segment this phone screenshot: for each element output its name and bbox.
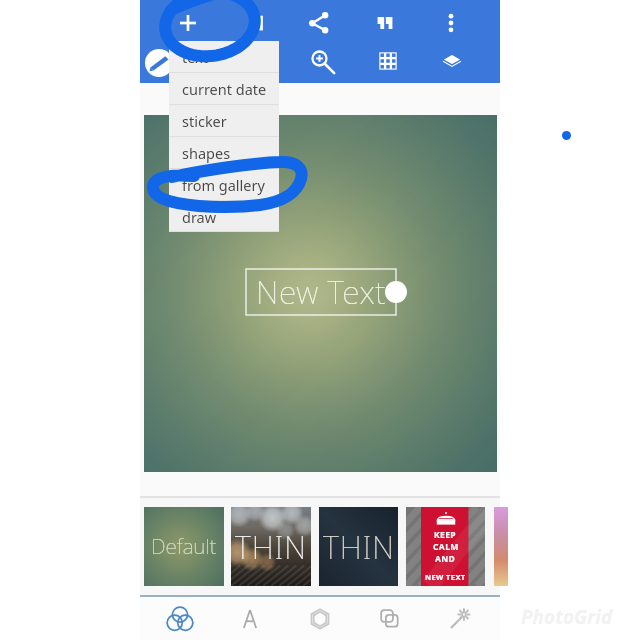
staticText: current date xyxy=(182,79,267,99)
button[interactable]: text xyxy=(169,41,279,73)
button[interactable]: THIN xyxy=(319,507,398,586)
staticText: THIN xyxy=(235,526,307,568)
button[interactable]: Filters xyxy=(158,602,202,636)
staticText: draw xyxy=(182,207,217,227)
staticText: AND xyxy=(435,553,456,565)
button[interactable]: More options xyxy=(433,5,469,41)
staticText: Default xyxy=(151,532,217,561)
staticText: CALM xyxy=(433,541,459,553)
button[interactable]: Save xyxy=(239,5,275,41)
staticText: New Text xyxy=(256,270,387,314)
staticText: NEW TEXT xyxy=(425,572,466,582)
button[interactable]: shapes xyxy=(169,137,279,169)
staticText: PhotoGrid xyxy=(521,604,613,630)
button[interactable]: current date xyxy=(169,73,279,105)
button[interactable]: Grid xyxy=(370,43,406,79)
staticText: KEEP xyxy=(434,529,457,541)
button[interactable]: Add xyxy=(170,5,206,41)
button[interactable]: Frames xyxy=(368,602,412,636)
staticText: sticker xyxy=(182,111,227,131)
staticText: from gallery xyxy=(182,175,265,195)
staticText: shapes xyxy=(182,143,231,163)
button[interactable]: sticker xyxy=(169,105,279,137)
button[interactable]: Shapes xyxy=(298,602,342,636)
button[interactable]: Text xyxy=(228,602,272,636)
staticText: text xyxy=(182,47,209,67)
button[interactable]: Magic xyxy=(438,602,482,636)
button[interactable]: KEEP xyxy=(406,507,485,586)
button[interactable]: from gallery xyxy=(169,169,279,201)
button[interactable]: Zoom xyxy=(304,43,340,79)
button[interactable]: Quote xyxy=(367,5,403,41)
button[interactable]: Layers xyxy=(434,43,470,79)
button[interactable]: Edit xyxy=(141,45,177,81)
button[interactable]: Share xyxy=(301,5,337,41)
button[interactable]: draw xyxy=(169,201,279,232)
button[interactable]: THIN xyxy=(231,507,311,586)
button[interactable]: Default xyxy=(144,507,224,586)
staticText: THIN xyxy=(323,526,395,568)
